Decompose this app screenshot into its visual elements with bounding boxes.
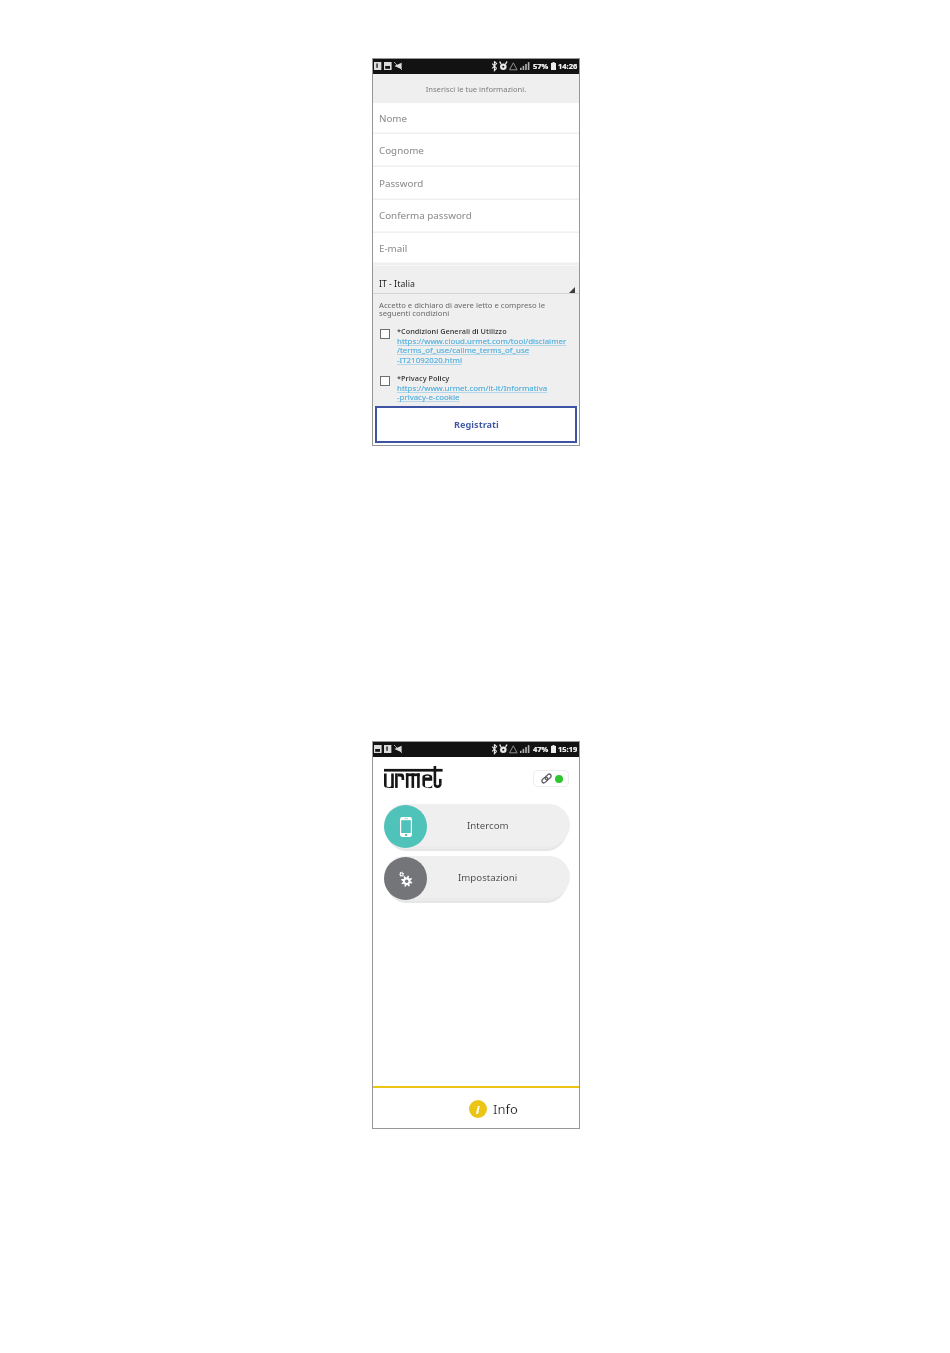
staticText: IT - Italia: [379, 278, 415, 290]
other: Urmet: [384, 766, 443, 790]
button[interactable]: Intercom: [384, 804, 570, 846]
button[interactable]: [372, 134, 580, 167]
staticText: Inserisci le tue informazioni.: [372, 84, 580, 94]
button[interactable]: i: [372, 1089, 580, 1128]
button[interactable]: [372, 103, 580, 135]
button[interactable]: [372, 264, 580, 295]
staticText: 14:26: [558, 61, 578, 71]
staticText: 47%: [533, 744, 549, 754]
staticText: Impostazioni: [458, 871, 518, 884]
staticText: Intercom: [467, 819, 509, 832]
staticText: Registrati: [454, 418, 499, 431]
staticText: *Condizioni Generali di Utilizzo: [397, 326, 507, 336]
staticText: https://www.urmet.com/it-it/Informativa: [397, 383, 548, 394]
staticText: Conferma password: [379, 209, 472, 222]
staticText: i: [476, 1102, 480, 1117]
staticText: E-mail: [379, 242, 408, 255]
button[interactable]: [372, 167, 580, 200]
staticText: Nome: [379, 112, 408, 125]
staticText: -privacy-e-cookie: [397, 392, 460, 403]
button[interactable]: [372, 233, 580, 264]
button[interactable]: [372, 371, 580, 404]
button[interactable]: [372, 324, 580, 367]
other: Intercom: [384, 805, 427, 848]
button[interactable]: [372, 200, 580, 233]
staticText: Accetto e dichiaro di avere letto e comp…: [379, 300, 546, 310]
other: Impostazioni: [384, 857, 427, 900]
staticText: -IT21092020.html: [397, 355, 462, 366]
staticText: Cognome: [379, 144, 424, 157]
staticText: https://www.cloud.urmet.com/tool/disclai…: [397, 336, 567, 347]
staticText: 57%: [533, 61, 549, 71]
button[interactable]: Connection status: [533, 770, 569, 787]
staticText: Info: [493, 1100, 518, 1118]
button[interactable]: Impostazioni: [384, 856, 570, 898]
staticText: *Privacy Policy: [397, 373, 450, 383]
button[interactable]: Registrati: [375, 406, 577, 443]
staticText: seguenti condizioni: [379, 308, 450, 318]
staticText: /terms_of_use/callme_terms_of_use: [397, 345, 530, 356]
staticText: Password: [379, 177, 424, 190]
staticText: 15:19: [558, 744, 578, 754]
